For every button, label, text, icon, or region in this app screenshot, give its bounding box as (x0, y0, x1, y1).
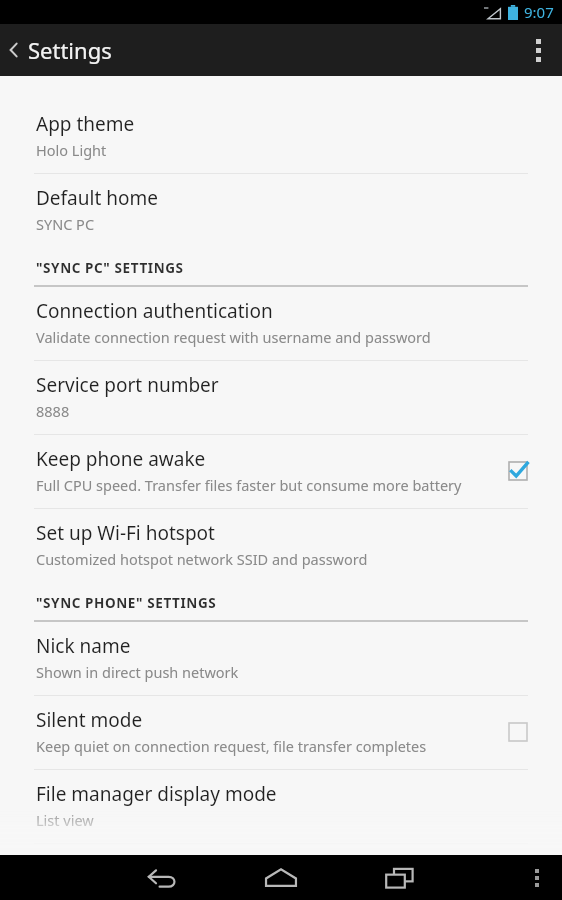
button[interactable]: Keep phone awake (0, 435, 562, 508)
staticText: Validate connection request with usernam… (36, 327, 431, 347)
button[interactable]: Service port number (0, 361, 562, 434)
button[interactable]: File manager display mode (0, 770, 562, 843)
staticText: Shown in direct push network (36, 662, 239, 682)
button[interactable]: App theme (0, 100, 562, 173)
button[interactable]: Settings (0, 24, 124, 76)
staticText: Connection authentication (36, 298, 273, 324)
button[interactable]: Recent apps (355, 855, 445, 900)
staticText: Holo Light (36, 140, 107, 160)
button[interactable]: Back (117, 855, 207, 900)
staticText: 8888 (36, 401, 70, 421)
button[interactable]: Set up Wi-Fi hotspot (0, 509, 562, 582)
button[interactable]: Unchecked (498, 712, 538, 752)
staticText: Silent mode (36, 707, 143, 733)
button[interactable]: Default home (0, 174, 562, 247)
button[interactable]: More options (514, 24, 562, 76)
staticText: 9:07 (524, 2, 554, 22)
staticText: Set up Wi-Fi hotspot (36, 520, 215, 546)
staticText: Service port number (36, 372, 219, 398)
staticText: Customized hotspot network SSID and pass… (36, 549, 368, 569)
staticText: Keep quiet on connection request, file t… (36, 736, 427, 756)
staticText: Settings (28, 35, 112, 65)
button[interactable]: Checked (498, 451, 538, 491)
button[interactable]: More options (512, 855, 562, 900)
staticText: File manager display mode (36, 781, 277, 807)
button[interactable]: Nick name (0, 622, 562, 695)
staticText: Full CPU speed. Transfer files faster bu… (36, 475, 462, 495)
staticText: Nick name (36, 633, 131, 659)
button[interactable]: Connection authentication (0, 287, 562, 360)
staticText: "SYNC PHONE" SETTINGS (36, 594, 217, 612)
staticText: Default home (36, 185, 158, 211)
staticText: Keep phone awake (36, 446, 206, 472)
staticText: SYNC PC (36, 214, 95, 234)
staticText: App theme (36, 111, 135, 137)
button[interactable]: Silent mode (0, 696, 562, 769)
button[interactable]: Home (236, 855, 326, 900)
staticText: "SYNC PC" SETTINGS (36, 259, 184, 277)
staticText: List view (36, 810, 94, 830)
